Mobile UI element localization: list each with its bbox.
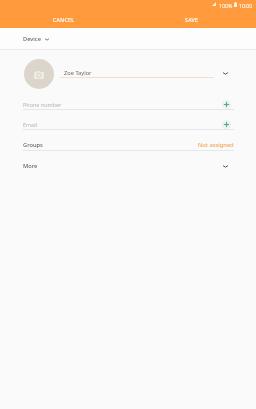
staticText: 100% — [219, 2, 233, 9]
button[interactable]: Device — [0, 28, 256, 50]
button[interactable]: SAVE — [128, 11, 256, 27]
staticText: Email — [23, 121, 37, 128]
button[interactable]: Zoe Taylor — [60, 64, 214, 80]
button[interactable]: Add Email — [219, 117, 233, 131]
button[interactable]: Add Phone number — [219, 97, 233, 111]
button[interactable]: Expand name fields — [218, 66, 233, 81]
staticText: Phone number — [23, 101, 62, 108]
staticText: 10:00 — [239, 2, 253, 9]
staticText: CANCEL — [53, 16, 75, 23]
staticText: Not assigned — [198, 141, 234, 149]
staticText: More — [23, 162, 38, 170]
staticText: Zoe Taylor — [64, 69, 92, 77]
button[interactable]: Email — [0, 115, 256, 133]
button[interactable]: Groups — [0, 135, 256, 155]
button[interactable]: Phone number — [0, 95, 256, 113]
staticText: Groups — [23, 141, 43, 149]
button[interactable]: More — [0, 156, 256, 176]
button[interactable]: Add photo — [24, 59, 54, 89]
staticText: Device — [23, 35, 41, 43]
staticText: SAVE — [185, 16, 199, 23]
button[interactable]: CANCEL — [0, 11, 128, 27]
